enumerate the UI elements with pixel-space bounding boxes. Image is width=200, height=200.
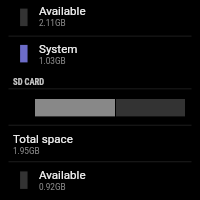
staticText: 0.92GB [39, 182, 66, 192]
staticText: SD CARD [13, 77, 45, 87]
button[interactable]: Total space [0, 126, 200, 163]
staticText: System [39, 42, 78, 56]
staticText: 2.11GB [39, 18, 66, 28]
button[interactable]: SD card usage [0, 89, 200, 125]
other: SD card section [0, 73, 200, 89]
button[interactable]: Available [0, 0, 200, 36]
staticText: 1.03GB [39, 56, 66, 66]
staticText: Available [39, 4, 86, 18]
staticText: 1.95GB [13, 146, 40, 156]
button[interactable]: Available [0, 162, 200, 199]
staticText: Total space [13, 132, 73, 146]
button[interactable]: System [0, 36, 200, 74]
staticText: Available [39, 168, 86, 182]
